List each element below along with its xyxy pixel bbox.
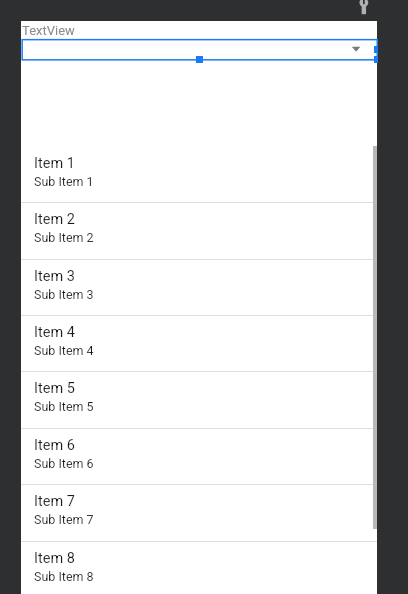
button[interactable]: Item 6 xyxy=(21,428,377,484)
button[interactable]: Item 1 xyxy=(21,146,377,202)
button[interactable]: Item 4 xyxy=(21,315,377,371)
staticText: Sub Item 4 xyxy=(34,343,94,358)
staticText: Sub Item 5 xyxy=(34,399,94,414)
staticText: Item 4 xyxy=(34,324,75,341)
button[interactable]: Item 5 xyxy=(21,371,377,427)
staticText: TextView xyxy=(22,23,75,38)
staticText: Item 1 xyxy=(34,155,75,172)
staticText: Item 3 xyxy=(34,268,75,285)
button[interactable]: Spinner xyxy=(21,38,378,62)
button[interactable]: Item 8 xyxy=(21,541,377,594)
staticText: Sub Item 6 xyxy=(34,456,94,471)
staticText: Sub Item 3 xyxy=(34,287,94,302)
staticText: Item 2 xyxy=(34,211,75,228)
staticText: Item 6 xyxy=(34,437,75,454)
button[interactable]: Item 2 xyxy=(21,202,377,258)
staticText: Item 7 xyxy=(34,493,75,510)
staticText: Item 5 xyxy=(34,380,75,397)
staticText: Sub Item 2 xyxy=(34,230,94,245)
button[interactable]: Item 7 xyxy=(21,484,377,540)
staticText: Sub Item 7 xyxy=(34,512,94,527)
staticText: Sub Item 8 xyxy=(34,569,94,584)
button[interactable]: Item 3 xyxy=(21,259,377,315)
staticText: Item 8 xyxy=(34,550,75,567)
button[interactable]: Design tools xyxy=(354,0,374,20)
staticText: Sub Item 1 xyxy=(34,174,94,189)
button[interactable]: TextView xyxy=(22,21,142,39)
